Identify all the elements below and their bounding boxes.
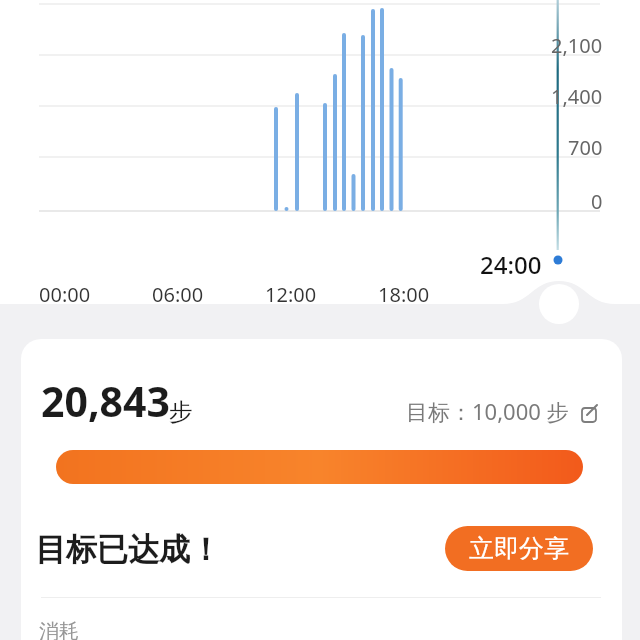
- staticText: 1,400: [551, 83, 603, 107]
- staticText: 12:00: [265, 281, 317, 303]
- staticText: 2,100: [551, 32, 603, 56]
- staticText: 700: [568, 134, 603, 158]
- staticText: 目标：10,000 步: [406, 396, 569, 424]
- staticText: 目标已达成！: [35, 530, 221, 569]
- button[interactable]: 目标：10,000 步: [301, 396, 569, 424]
- staticText: 06:00: [152, 281, 204, 303]
- staticText: 0: [591, 188, 603, 212]
- staticText: 立即分享: [469, 533, 569, 564]
- staticText: 18:00: [378, 281, 430, 303]
- staticText: 24:00: [480, 248, 542, 275]
- staticText: 步: [169, 397, 193, 427]
- staticText: 20,843: [41, 373, 170, 429]
- staticText: 消耗: [39, 619, 79, 640]
- staticText: 00:00: [39, 281, 91, 303]
- button[interactable]: 立即分享: [445, 526, 593, 571]
- button[interactable]: [581, 405, 601, 425]
